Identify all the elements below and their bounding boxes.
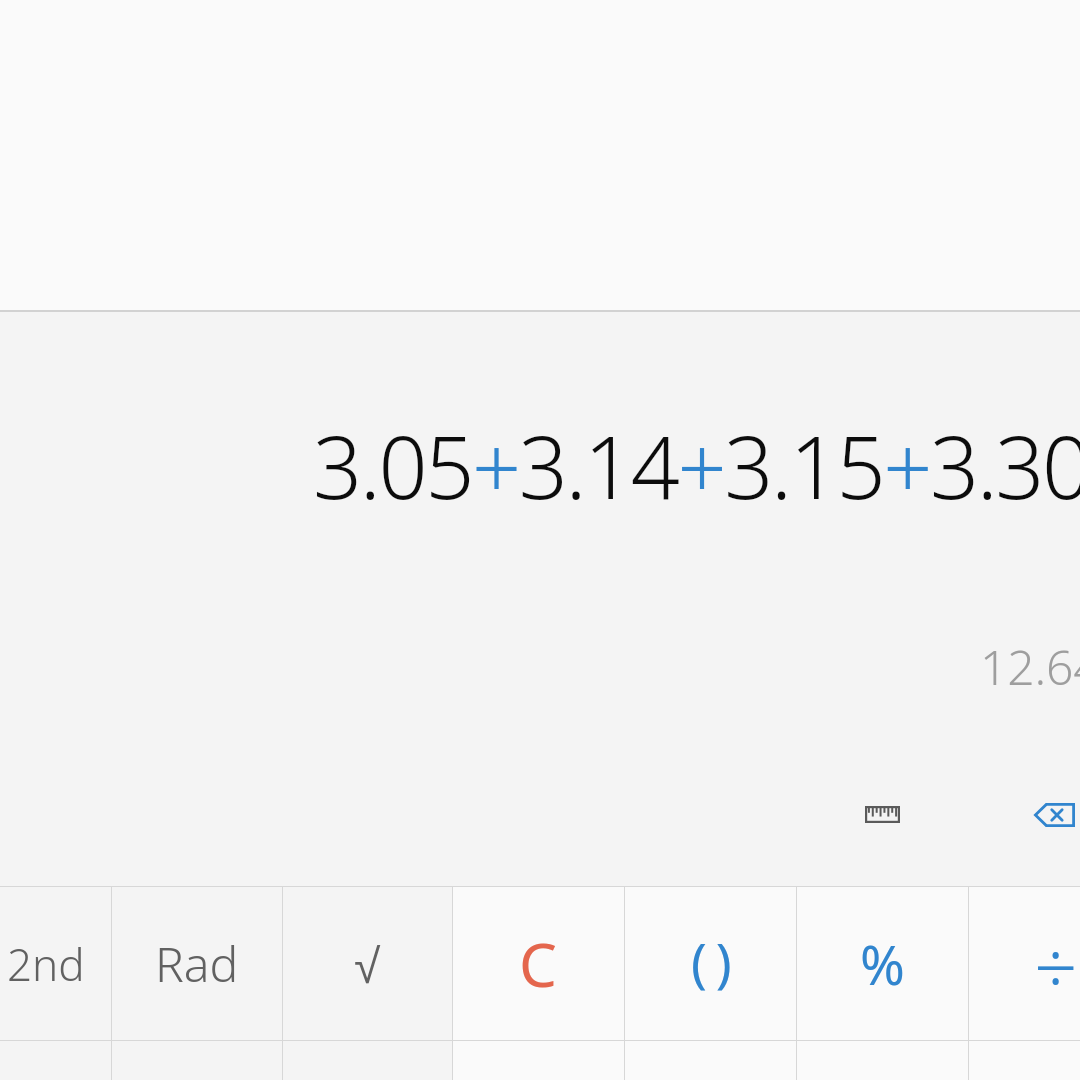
staticText: ÷	[1034, 914, 1078, 1018]
staticText: 2nd	[7, 934, 85, 994]
staticText: 3.05+3.14+3.15+3.30	[313, 407, 1080, 524]
staticText: ( )	[691, 925, 732, 997]
button[interactable]: ( )	[624, 887, 796, 1040]
button[interactable]: Unit converter	[846, 782, 918, 846]
staticText: Rad	[155, 931, 239, 996]
staticText: C	[519, 923, 557, 1005]
staticText: 12.6400	[980, 634, 1080, 699]
button[interactable]: %	[796, 887, 968, 1040]
button[interactable]: Backspace	[1014, 783, 1080, 847]
button[interactable]: ÷	[968, 887, 1080, 1040]
button[interactable]: 2nd	[0, 887, 111, 1040]
staticText: %	[860, 927, 905, 1001]
button[interactable]: ×	[968, 1041, 1080, 1080]
button[interactable]: C	[452, 887, 624, 1040]
staticText: √	[354, 940, 381, 994]
button[interactable]: cos	[111, 1041, 283, 1080]
button[interactable]: Rad	[111, 887, 283, 1040]
button[interactable]: √	[282, 887, 452, 1040]
